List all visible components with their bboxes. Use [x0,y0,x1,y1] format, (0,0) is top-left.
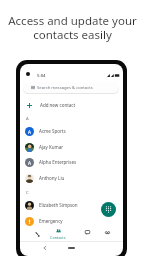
staticText: A [28,160,31,166]
button[interactable]: A [20,154,123,170]
button[interactable]: Messages [76,230,98,242]
staticText: Add new contact [40,102,76,108]
staticText: Anthony Liu [39,175,65,181]
button[interactable]: Ajay Kumar [20,139,123,155]
staticText: Emergency [39,218,63,224]
staticText: Ajay Kumar [39,144,64,150]
button[interactable]: Voicemail [96,230,118,242]
button[interactable]: Add new contact [20,98,123,112]
staticText: Elizabeth Simpson [39,202,78,208]
button[interactable]: Anthony Liu [20,170,123,186]
staticText: Alpha Enterprises [39,159,77,165]
button[interactable]: Search messages & contacts [23,82,119,93]
button[interactable]: A [20,123,123,139]
button[interactable]: Dialpad [101,202,116,217]
staticText: Search messages & contacts [37,85,93,91]
button[interactable]: Emergency [20,213,123,229]
staticText: Access and update your contacts easily [8,13,137,42]
staticText: Acme Sports [39,128,66,134]
button[interactable]: Recents [26,232,48,244]
staticText: Contacts [50,235,66,240]
staticText: 5:04 [37,72,46,78]
staticText: C [26,190,29,196]
button[interactable]: Elizabeth Simpson [20,197,123,213]
staticText: A [28,129,31,135]
button[interactable]: Contacts [47,229,69,241]
staticText: A [26,116,29,122]
